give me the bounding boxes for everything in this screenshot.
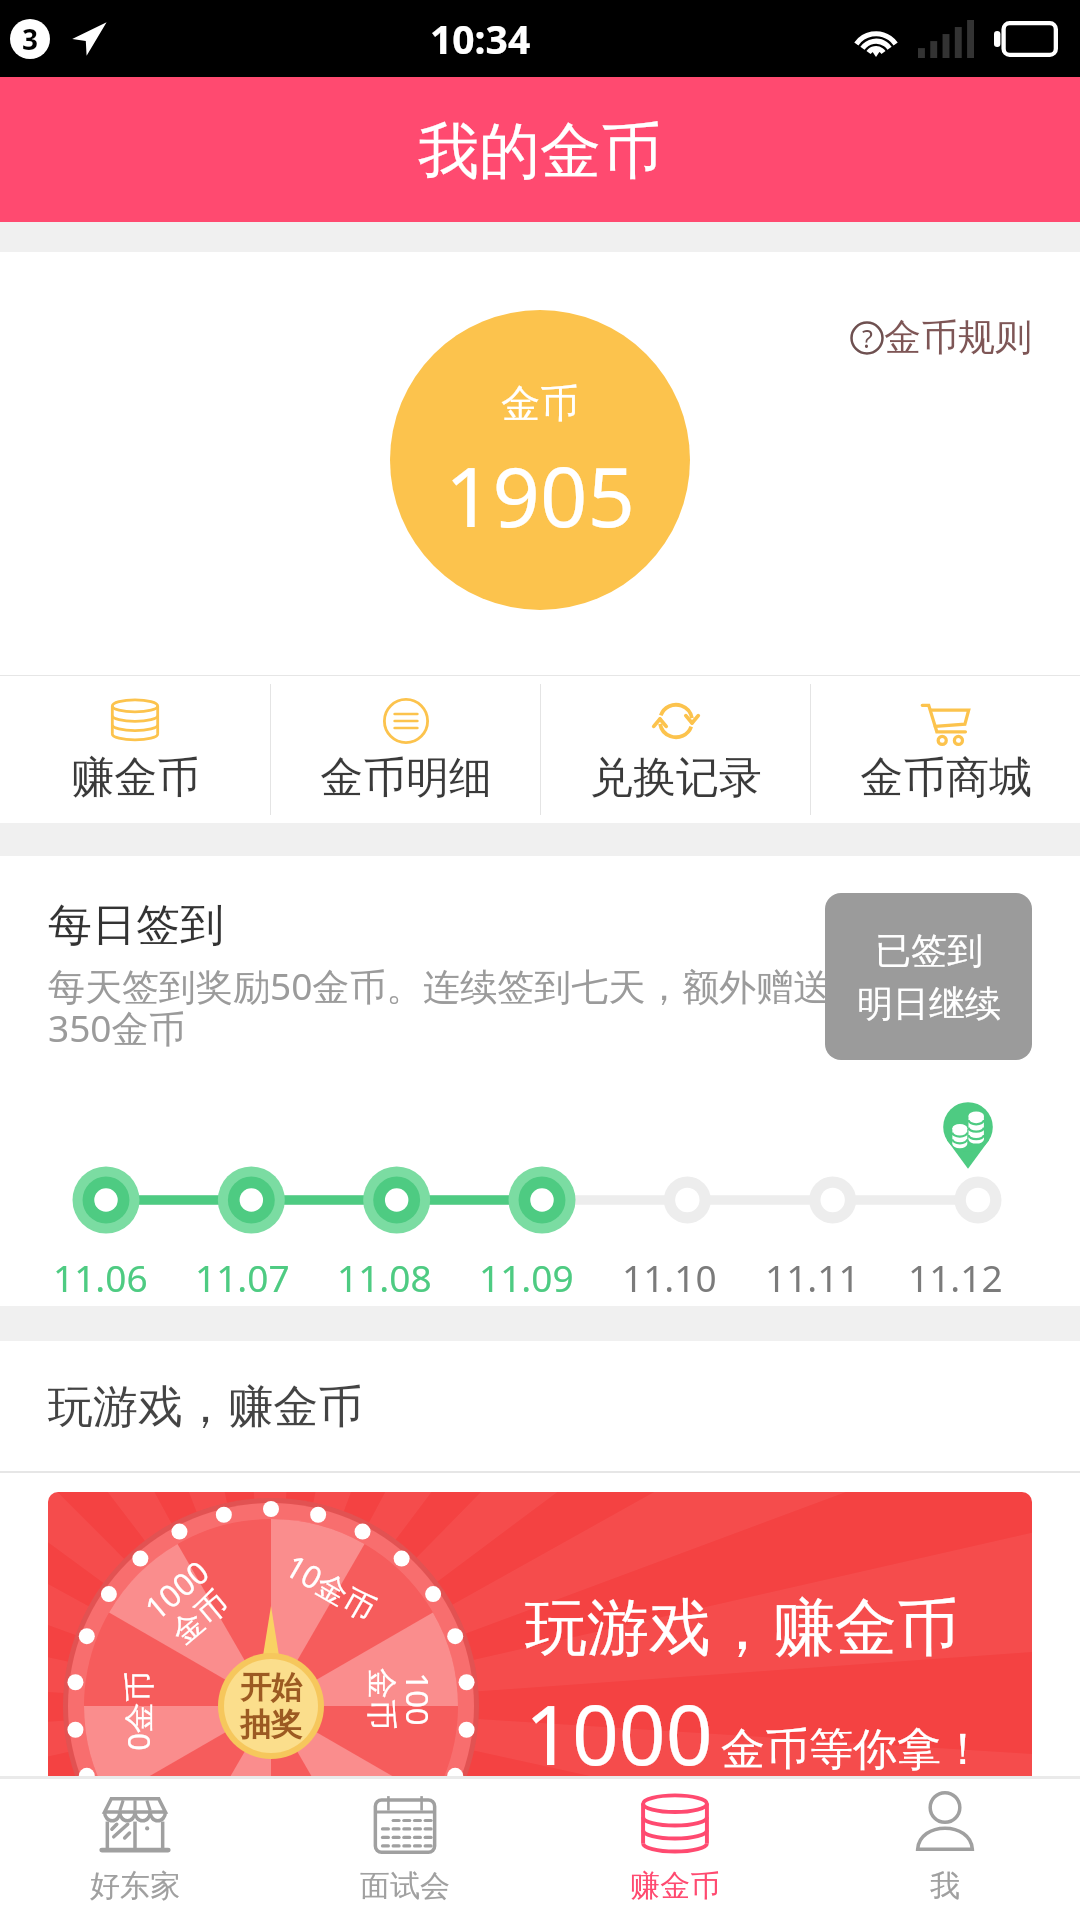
button[interactable]: 兑换记录 — [541, 676, 810, 823]
staticText: 0金币 — [117, 1671, 159, 1751]
staticText: 已签到 明日继续 — [857, 928, 1001, 1026]
staticText: 10金币 — [278, 1544, 384, 1630]
staticText: 11.11 — [765, 1252, 860, 1302]
staticText: 赚金币 — [630, 1867, 720, 1905]
staticText: 金币商城 — [860, 751, 1032, 805]
staticText: 我 — [930, 1867, 960, 1905]
button[interactable]: 赚金币 — [0, 676, 270, 823]
staticText: 每天签到奖励50金币。连续签到七天，额外赠送350金币 — [48, 960, 848, 1053]
button[interactable]: 已签到 明日继续 — [825, 893, 1032, 1060]
staticText: 1000 金币 — [136, 1551, 240, 1655]
button[interactable]: 金币明细 — [271, 676, 540, 823]
staticText: 3 — [22, 20, 39, 58]
staticText: 1000 — [525, 1677, 713, 1789]
staticText: 11.12 — [908, 1252, 1003, 1302]
staticText: 金币明细 — [320, 751, 492, 805]
button[interactable]: 我 — [810, 1779, 1080, 1912]
staticText: 11.07 — [195, 1252, 290, 1302]
staticText: 1905 — [445, 438, 635, 551]
staticText: 金币规则 — [884, 314, 1032, 361]
button[interactable]: 金币 — [390, 310, 690, 610]
staticText: 每日签到 — [48, 898, 224, 953]
staticText: 金币等你拿！ — [721, 1722, 985, 1777]
staticText: 11.09 — [479, 1252, 574, 1302]
staticText: 100 金币 — [362, 1668, 439, 1730]
button[interactable]: 好东家 — [0, 1779, 270, 1912]
staticText: 好东家 — [90, 1867, 180, 1905]
staticText: 金币 — [501, 379, 579, 428]
button[interactable]: 玩游戏，赚金币 1000金币等你拿 — [48, 1492, 1032, 1912]
staticText: 11.10 — [622, 1252, 717, 1302]
staticText: 我的金币 — [418, 113, 662, 190]
button[interactable]: 面试会 — [270, 1779, 540, 1912]
staticText: 11.08 — [337, 1252, 432, 1302]
staticText: 玩游戏，赚金币 — [525, 1589, 959, 1667]
button[interactable]: 开始 抽奖 — [219, 1654, 323, 1758]
staticText: 兑换记录 — [590, 751, 762, 805]
staticText: 开始 抽奖 — [240, 1668, 302, 1745]
staticText: 10:34 — [430, 12, 531, 65]
button[interactable]: 赚金币 — [540, 1779, 810, 1912]
staticText: 玩游戏，赚金币 — [48, 1379, 363, 1436]
button[interactable]: ? — [850, 314, 1032, 361]
staticText: ? — [862, 321, 873, 355]
staticText: 面试会 — [360, 1867, 450, 1905]
staticText: 赚金币 — [71, 751, 200, 805]
button[interactable]: 金币商城 — [811, 676, 1080, 823]
staticText: 11.06 — [53, 1252, 148, 1302]
